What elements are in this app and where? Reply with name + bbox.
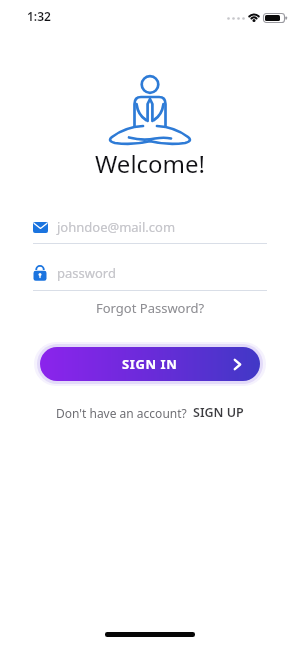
button[interactable]: SIGN UP [193, 404, 244, 421]
button[interactable]: Forgot Password? [96, 299, 205, 317]
staticText: johndoe@mail.com [57, 218, 176, 236]
button[interactable]: SIGN IN [40, 347, 260, 381]
staticText: SIGN UP [193, 404, 244, 421]
button[interactable]: password [33, 262, 267, 284]
staticText: Don't have an account? [56, 405, 187, 421]
staticText: Forgot Password? [96, 299, 205, 317]
staticText: 1:32 [27, 8, 51, 24]
staticText: SIGN IN [122, 355, 178, 373]
staticText: password [57, 264, 116, 282]
button[interactable]: johndoe@mail.com [33, 216, 267, 238]
staticText: Welcome! [95, 147, 206, 180]
